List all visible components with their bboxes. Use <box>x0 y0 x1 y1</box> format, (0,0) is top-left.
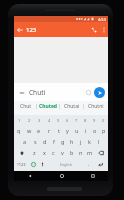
button[interactable]: g <box>58 136 67 147</box>
staticText: 4 <box>48 118 51 123</box>
button[interactable]: Chut <box>14 101 37 112</box>
staticText: u <box>75 127 79 134</box>
staticText: 8 <box>84 118 87 123</box>
button[interactable]: 8 <box>81 115 90 125</box>
button[interactable]: Chuted <box>37 101 60 112</box>
button[interactable]: Sticker <box>84 88 93 97</box>
staticText: Chuted <box>39 103 58 110</box>
button[interactable]: 9 <box>90 115 99 125</box>
button[interactable]: Back <box>14 22 26 37</box>
staticText: l <box>98 138 100 145</box>
staticText: 9 <box>93 118 96 123</box>
button[interactable]: Chutni <box>84 101 108 112</box>
button[interactable]: 0 <box>99 115 108 125</box>
button[interactable]: j <box>76 136 85 147</box>
staticText: p <box>102 127 106 134</box>
button[interactable]: d <box>40 136 49 147</box>
staticText: h <box>70 138 74 145</box>
button[interactable]: u <box>72 125 81 136</box>
staticText: English <box>60 162 72 167</box>
button[interactable]: a <box>20 136 30 147</box>
staticText: . <box>88 161 90 168</box>
staticText: s <box>34 138 37 145</box>
button[interactable]: 5 <box>54 115 63 125</box>
staticText: n <box>79 149 83 156</box>
staticText: k <box>88 138 91 145</box>
button[interactable]: r <box>44 125 54 136</box>
staticText: Chutai <box>64 103 80 110</box>
button[interactable]: 4 <box>44 115 54 125</box>
staticText: c <box>52 149 55 156</box>
button[interactable]: b <box>67 147 76 158</box>
button[interactable]: 3 <box>34 115 44 125</box>
staticText: 6 <box>66 118 69 123</box>
staticText: v <box>61 149 64 156</box>
staticText: i <box>85 127 87 134</box>
button[interactable]: Send <box>94 87 105 98</box>
button[interactable]: Recents <box>77 171 108 181</box>
button[interactable]: e <box>34 125 44 136</box>
button[interactable]: Shift <box>14 147 29 158</box>
button[interactable]: 7 <box>72 115 81 125</box>
button[interactable]: n <box>76 147 85 158</box>
button[interactable]: s <box>30 136 40 147</box>
button[interactable]: f <box>49 136 58 147</box>
button[interactable]: x <box>39 147 49 158</box>
staticText: t <box>58 127 60 134</box>
staticText: 5 <box>57 118 60 123</box>
button[interactable]: m <box>85 147 94 158</box>
button[interactable]: i <box>81 125 90 136</box>
button[interactable]: y <box>63 125 72 136</box>
button[interactable]: o <box>90 125 99 136</box>
button[interactable]: Chutai <box>60 101 84 112</box>
button[interactable]: p <box>99 125 108 136</box>
button[interactable]: Home <box>46 171 77 181</box>
staticText: Chutni <box>88 103 104 110</box>
button[interactable]: Voice input <box>38 158 47 170</box>
button[interactable]: English <box>47 158 84 170</box>
button[interactable]: ?123 <box>14 158 29 170</box>
staticText: Chut <box>20 103 32 110</box>
staticText: r <box>48 127 51 134</box>
button[interactable]: q <box>14 125 24 136</box>
button[interactable]: c <box>49 147 58 158</box>
button[interactable]: w <box>24 125 34 136</box>
staticText: j <box>80 138 82 145</box>
staticText: m <box>87 149 93 156</box>
button[interactable]: l <box>94 136 103 147</box>
staticText: y <box>66 127 69 134</box>
button[interactable]: v <box>58 147 67 158</box>
staticText: 3 <box>38 118 41 123</box>
staticText: 2 <box>28 118 31 123</box>
button[interactable]: z <box>29 147 39 158</box>
button[interactable]: 6 <box>63 115 72 125</box>
staticText: f <box>53 138 55 145</box>
button[interactable]: Backspace <box>94 147 108 158</box>
staticText: 123 <box>26 26 37 34</box>
staticText: d <box>43 138 47 145</box>
button[interactable]: 2 <box>24 115 34 125</box>
staticText: a <box>23 138 27 145</box>
staticText: Chuti <box>29 88 46 97</box>
button[interactable]: Back <box>14 171 46 181</box>
staticText: 1 <box>18 118 21 123</box>
staticText: b <box>70 149 74 156</box>
button[interactable]: Emoji <box>29 158 38 170</box>
staticText: 7 <box>75 118 78 123</box>
button[interactable]: . <box>84 158 93 170</box>
button[interactable]: h <box>67 136 76 147</box>
button[interactable]: t <box>54 125 63 136</box>
button[interactable]: More options <box>100 22 108 37</box>
button[interactable]: Add attachment <box>17 88 26 97</box>
staticText: w <box>27 127 32 134</box>
button[interactable]: k <box>85 136 94 147</box>
staticText: e <box>37 127 41 134</box>
staticText: z <box>33 149 36 156</box>
button[interactable]: Enter <box>93 158 108 170</box>
staticText: 4:53 <box>98 17 106 22</box>
staticText: o <box>93 127 97 134</box>
staticText: ?123 <box>17 162 26 167</box>
button[interactable]: 1 <box>14 115 24 125</box>
staticText: x <box>43 149 46 156</box>
button[interactable]: Call <box>87 22 100 37</box>
